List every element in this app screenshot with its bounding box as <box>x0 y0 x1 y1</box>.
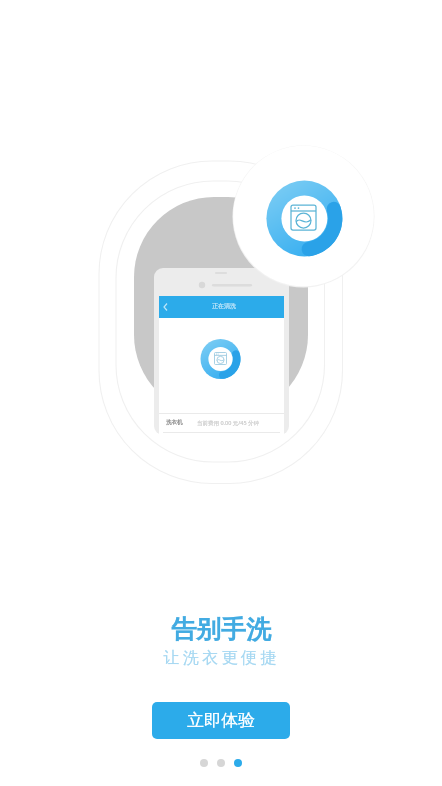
staticText: 洗衣机 <box>166 419 183 426</box>
staticText: 让洗衣更便捷 <box>163 648 280 668</box>
button[interactable]: Page 2 <box>217 759 225 767</box>
staticText: 正在清洗 <box>212 302 236 310</box>
staticText: 当前费用 0.00 元/45 分钟 <box>197 419 260 427</box>
button[interactable]: Page 1 <box>200 759 208 767</box>
staticText: 立即体验 <box>187 710 255 731</box>
button[interactable]: Page 3 <box>234 759 242 767</box>
button[interactable]: 立即体验 <box>152 702 290 739</box>
staticText: 告别手洗 <box>171 614 271 645</box>
